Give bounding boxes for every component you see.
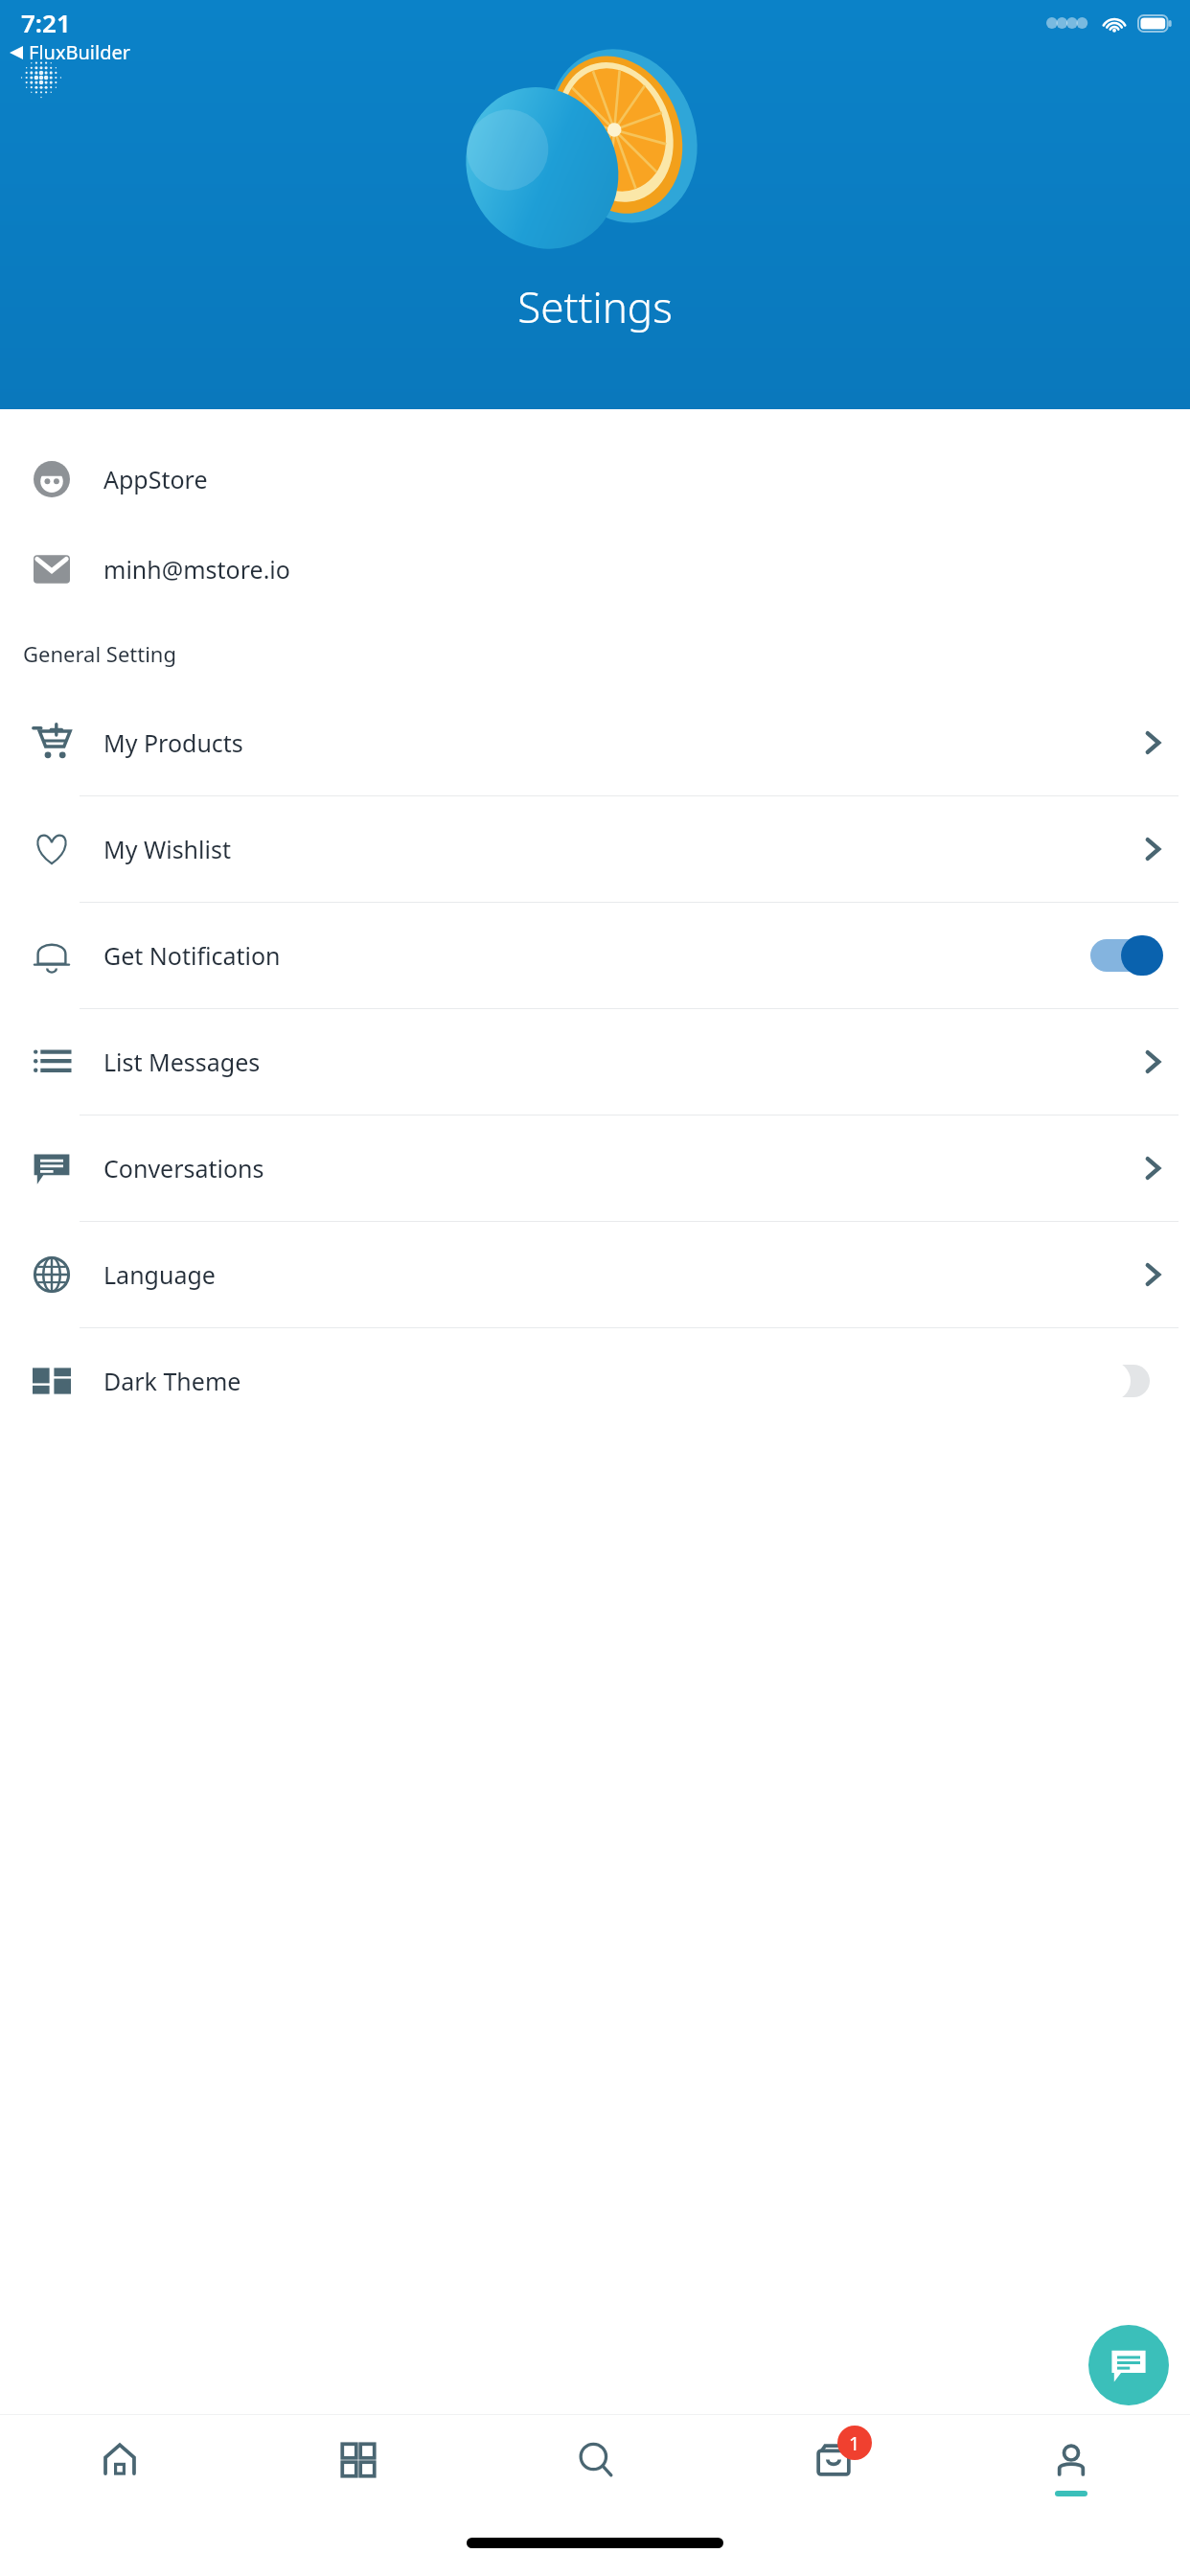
button[interactable]: AppStore (0, 444, 1190, 515)
staticText: 1 (849, 2430, 860, 2456)
staticText: Get Notification (103, 939, 281, 972)
button[interactable]: Search (477, 2415, 715, 2520)
button[interactable]: Profile (952, 2415, 1190, 2520)
button[interactable]: Menu (19, 56, 63, 100)
staticText: Language (103, 1258, 216, 1291)
button[interactable]: Language (0, 1222, 1190, 1327)
staticText: Settings (517, 278, 673, 335)
staticText: minh@mstore.io (103, 553, 290, 586)
button[interactable]: Toggle (1088, 935, 1165, 976)
staticText: List Messages (103, 1046, 261, 1078)
staticText: My Products (103, 726, 243, 759)
staticText: My Wishlist (103, 833, 231, 865)
button[interactable]: My Wishlist (0, 796, 1190, 902)
button[interactable]: Dark Theme (0, 1328, 1190, 1434)
button[interactable]: List Messages (0, 1009, 1190, 1115)
button[interactable]: Cart (715, 2415, 952, 2520)
staticText: Conversations (103, 1152, 264, 1184)
staticText: FluxBuilder (29, 39, 130, 65)
staticText: General Setting (23, 639, 176, 668)
button[interactable]: Categories (239, 2415, 477, 2520)
staticText: AppStore (103, 463, 208, 495)
button[interactable]: Conversations (0, 1115, 1190, 1221)
button[interactable]: Get Notification (0, 903, 1190, 1008)
staticText: Dark Theme (103, 1365, 241, 1397)
staticText: 7:21 (21, 6, 71, 39)
button[interactable]: Toggle (1088, 1361, 1165, 1401)
button[interactable]: Messages (1088, 2325, 1169, 2405)
button[interactable]: Home (0, 2415, 239, 2520)
button[interactable]: minh@mstore.io (0, 534, 1190, 605)
button[interactable]: My Products (0, 689, 1190, 795)
